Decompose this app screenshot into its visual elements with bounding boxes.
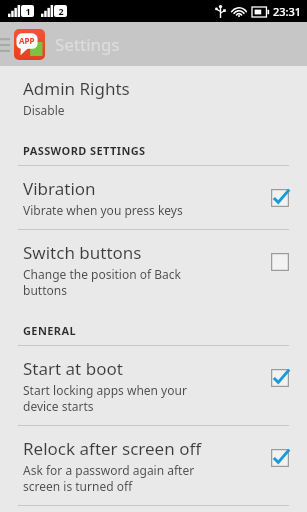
staticText: APP (19, 35, 35, 46)
staticText: Vibration (23, 177, 96, 200)
staticText: Start locking apps when your device star… (23, 382, 187, 414)
staticText: Change the position of Back buttons (23, 266, 181, 298)
staticText: PASSWORD SETTINGS (23, 143, 146, 158)
staticText: Disable (23, 102, 65, 118)
staticText: Relock after screen off (23, 437, 202, 460)
staticText: Admin Rights (23, 77, 130, 100)
staticText: Switch buttons (23, 241, 142, 264)
staticText: 2 (58, 5, 64, 17)
button[interactable]: Switch buttons (0, 230, 307, 309)
staticText: 1 (25, 5, 31, 17)
button[interactable]: Admin Rights (0, 66, 307, 129)
staticText: Ask for a password again after screen is… (23, 462, 195, 494)
staticText: 23:31 (273, 4, 302, 19)
staticText: Start at boot (23, 357, 123, 380)
button[interactable]: Relock after screen off (0, 426, 307, 505)
staticText: Settings (55, 33, 120, 56)
button[interactable]: Vibration (0, 166, 307, 229)
staticText: Vibrate when you press keys (23, 202, 183, 218)
button[interactable]: Start at boot (0, 346, 307, 425)
button[interactable]: Open navigation drawer (0, 22, 10, 66)
staticText: GENERAL (23, 323, 77, 338)
